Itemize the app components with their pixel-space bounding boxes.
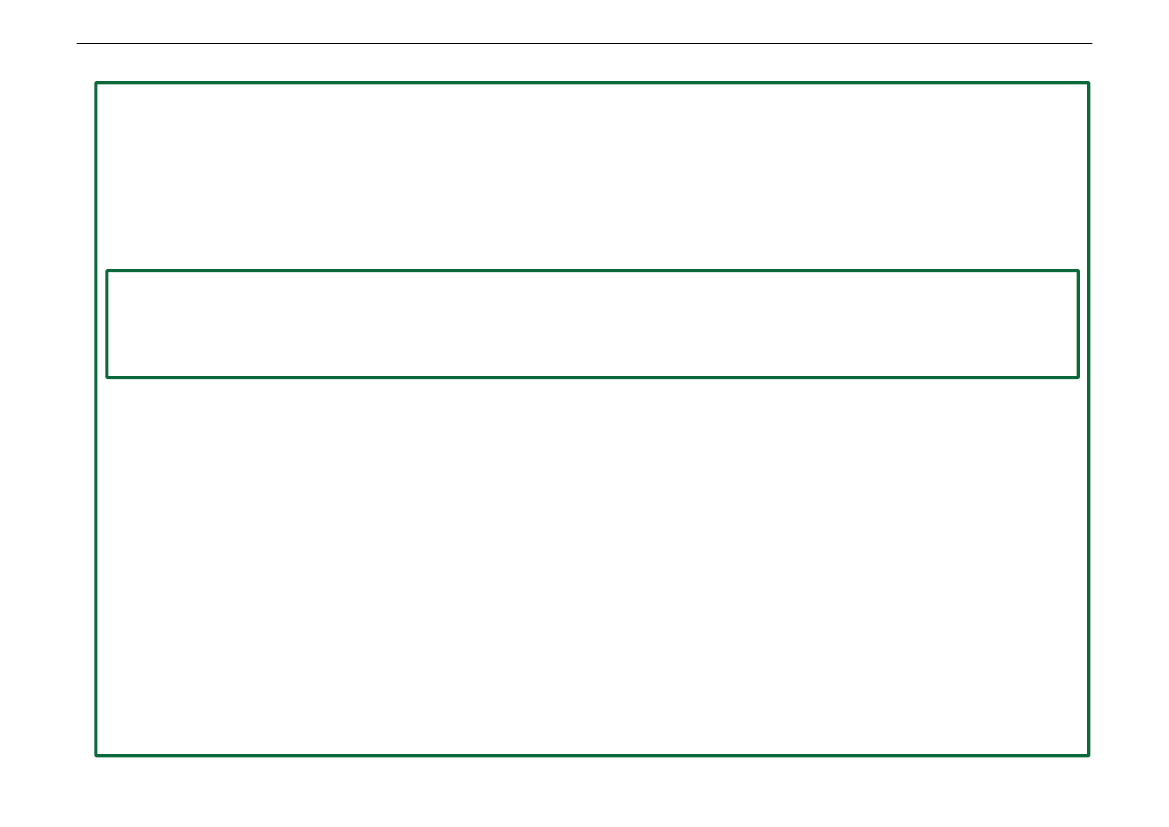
button[interactable]: Outlined container <box>94 81 1090 757</box>
button[interactable]: Outlined input field <box>105 269 1080 379</box>
